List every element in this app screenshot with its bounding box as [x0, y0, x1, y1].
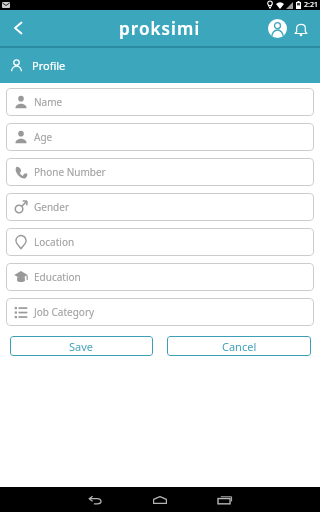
button[interactable] [148, 488, 172, 512]
button[interactable]: Phone Number [6, 158, 314, 186]
button[interactable]: Profile [0, 48, 320, 83]
staticText: Job Category [34, 305, 95, 319]
button[interactable] [213, 488, 237, 512]
button[interactable]: Name [6, 88, 314, 116]
button[interactable]: Age [6, 123, 314, 151]
staticText: Profile [32, 58, 66, 73]
button[interactable] [292, 20, 310, 38]
staticText: Location [34, 235, 75, 249]
button[interactable]: Save [10, 336, 153, 356]
button[interactable]: Gender [6, 193, 314, 221]
staticText: Age [34, 130, 53, 144]
button[interactable]: Job Category [6, 298, 314, 326]
staticText: Save [69, 339, 94, 354]
button[interactable] [83, 488, 107, 512]
staticText: Name [34, 95, 63, 109]
button[interactable] [268, 19, 287, 38]
button[interactable] [0, 10, 36, 46]
staticText: Phone Number [34, 165, 106, 179]
staticText: proksimi [119, 17, 201, 40]
staticText: Cancel [222, 339, 257, 354]
staticText: Gender [34, 200, 70, 214]
button[interactable]: Cancel [167, 336, 311, 356]
button[interactable]: Education [6, 263, 314, 291]
staticText: Education [34, 270, 81, 284]
staticText: 2:21 [304, 0, 318, 10]
button[interactable]: Location [6, 228, 314, 256]
